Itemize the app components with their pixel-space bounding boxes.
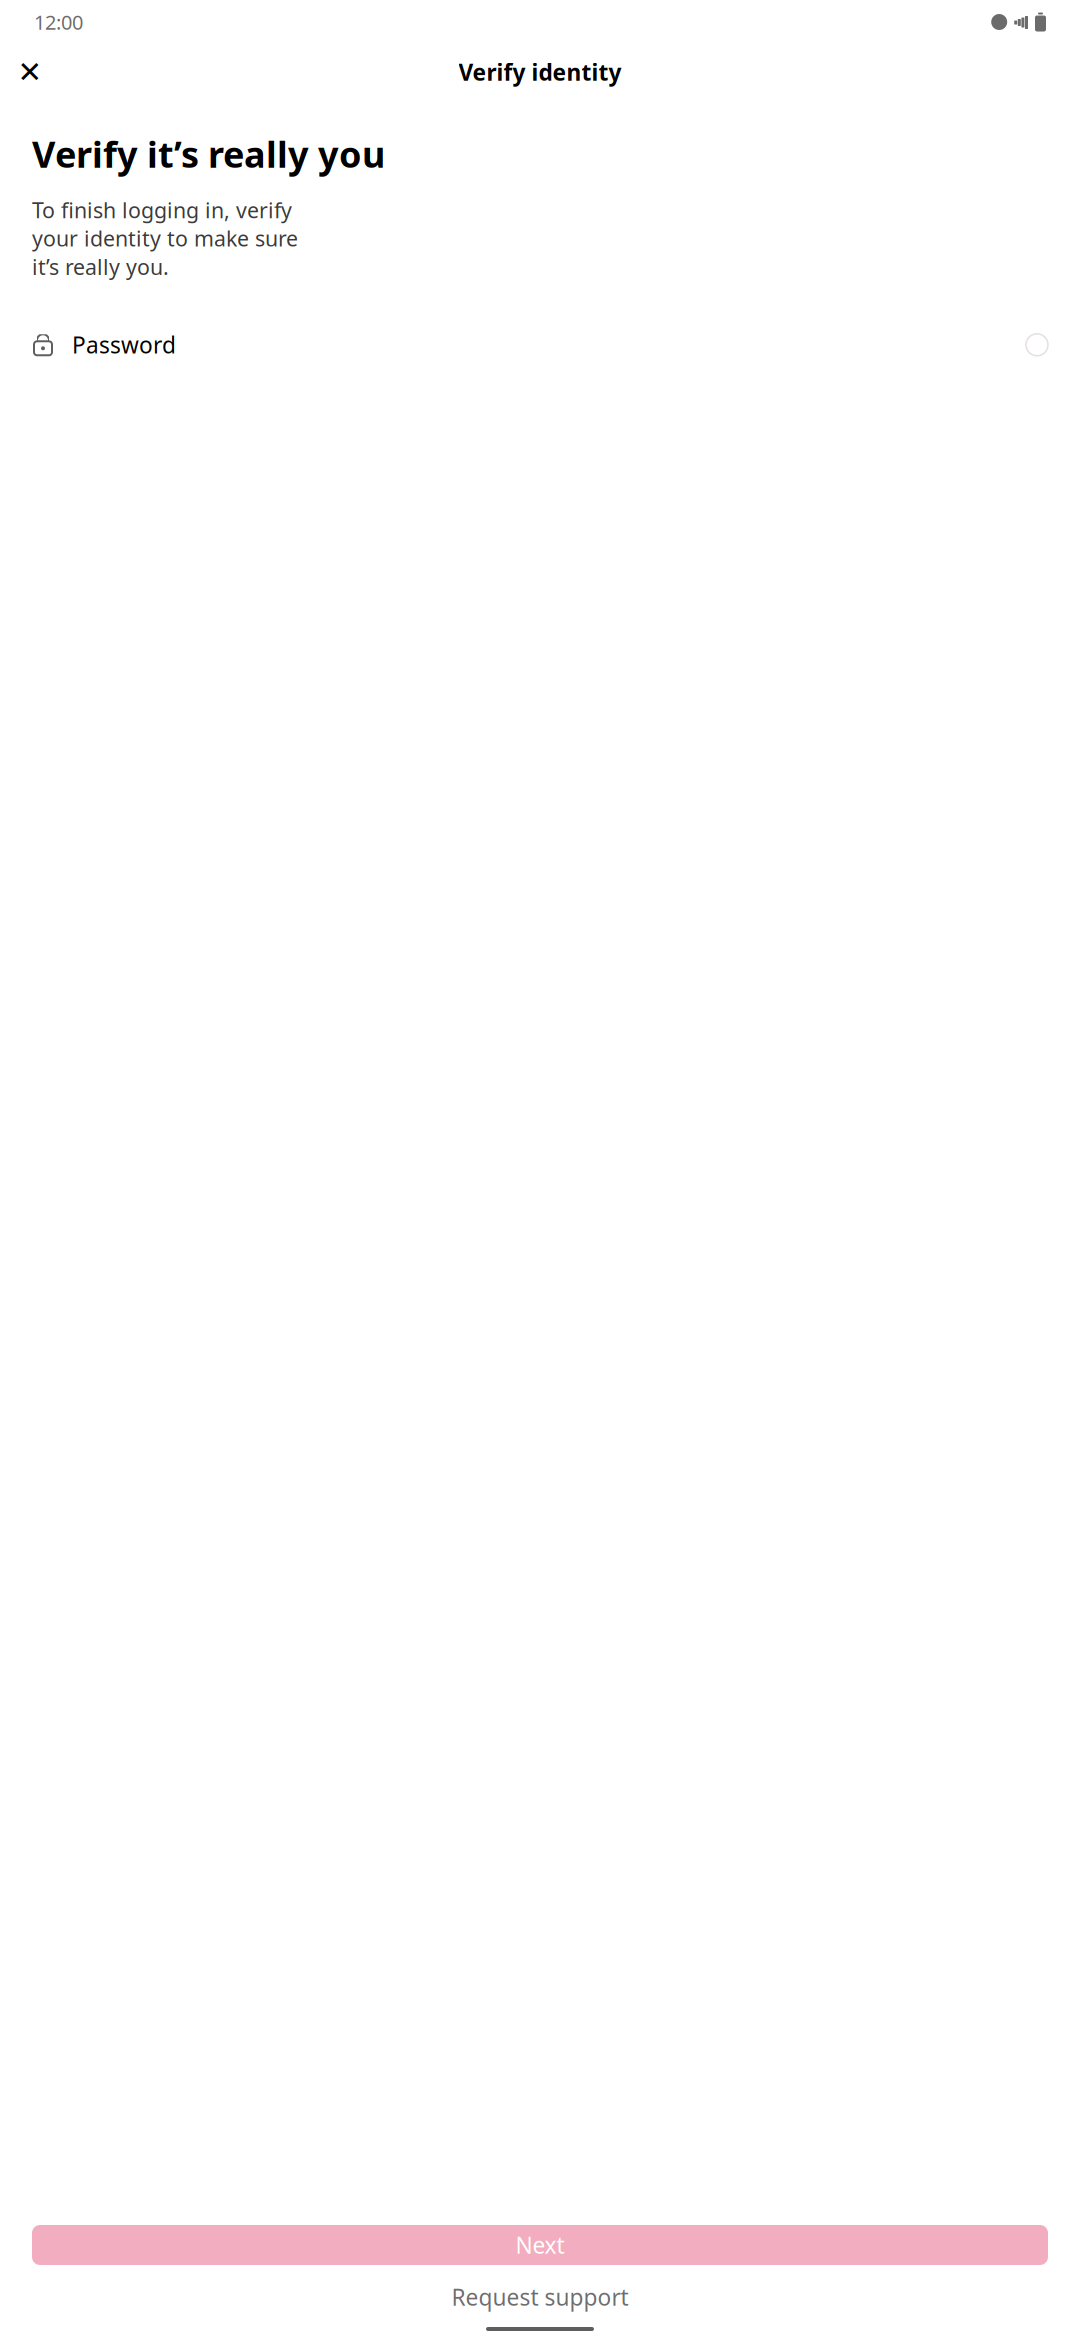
staticText: Password bbox=[72, 330, 176, 360]
staticText: Next bbox=[515, 2230, 564, 2260]
staticText: Request support bbox=[451, 2282, 628, 2312]
staticText: To finish logging in, verify your identi… bbox=[32, 196, 298, 281]
button[interactable]: Request support bbox=[0, 2275, 1080, 2319]
staticText: Verify it’s really you bbox=[32, 130, 385, 178]
button[interactable]: Close bbox=[6, 48, 54, 96]
button[interactable]: Next bbox=[32, 2225, 1048, 2265]
button[interactable]: Password bbox=[32, 321, 1048, 369]
staticText: 12:00 bbox=[34, 9, 83, 35]
staticText: ✕ bbox=[17, 55, 42, 89]
staticText: Verify identity bbox=[458, 57, 621, 87]
